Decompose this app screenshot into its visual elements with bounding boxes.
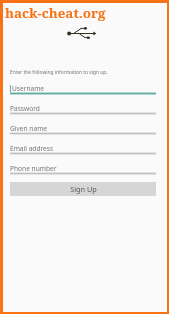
staticText: Email address xyxy=(10,144,54,153)
staticText: Password xyxy=(10,104,40,113)
staticText: hack-cheat.org xyxy=(5,4,106,22)
staticText: Phone number xyxy=(10,164,57,173)
button[interactable]: Sign Up xyxy=(10,182,156,196)
button[interactable]: Username xyxy=(10,79,156,95)
staticText: Given name xyxy=(10,124,48,133)
other: USB xyxy=(67,27,97,39)
button[interactable]: Given name xyxy=(10,119,156,135)
button[interactable]: Phone number xyxy=(10,159,156,175)
button[interactable]: Password xyxy=(10,99,156,115)
staticText: Username xyxy=(12,84,45,93)
button[interactable]: Email address xyxy=(10,139,156,155)
staticText: Sign Up xyxy=(70,184,97,194)
staticText: Enter the following information to sign … xyxy=(10,69,108,76)
